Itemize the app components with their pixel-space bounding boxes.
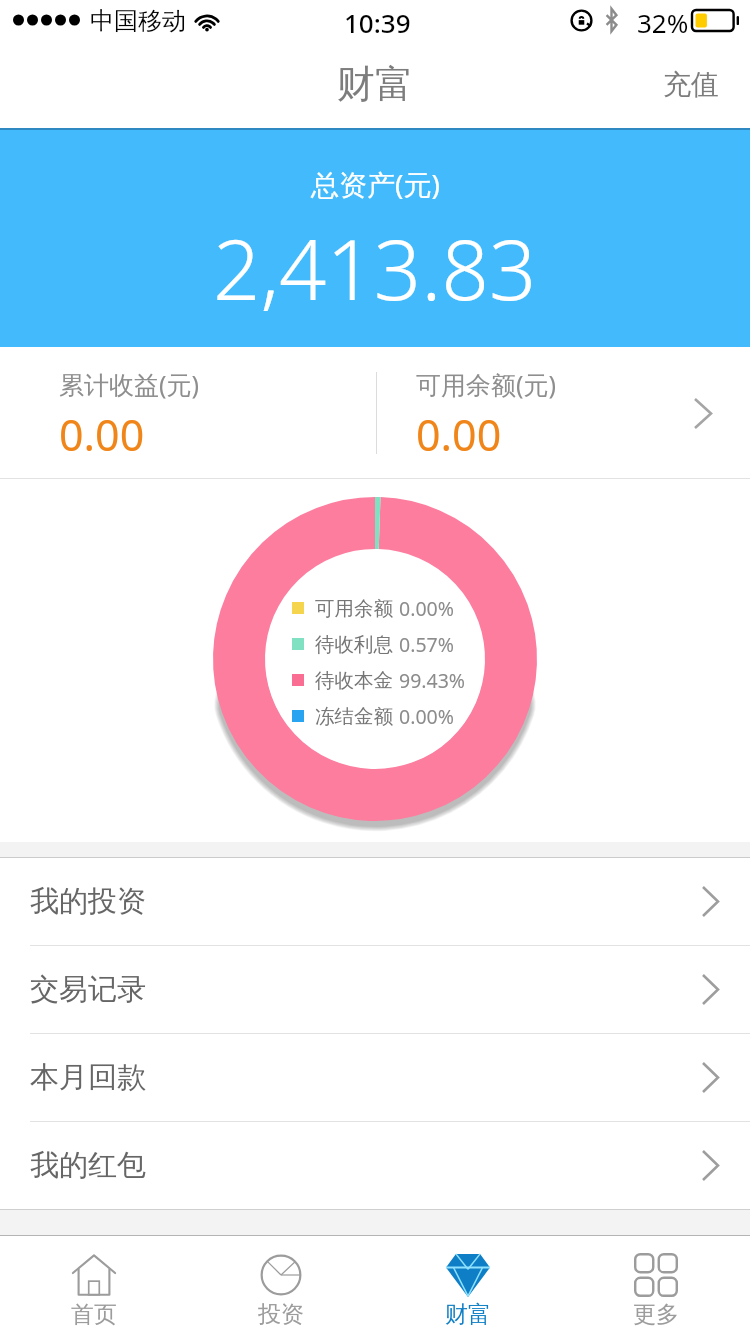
button[interactable]: 首页	[0, 1236, 187, 1334]
staticText: 待收利息	[315, 632, 393, 657]
staticText: 0.00	[59, 405, 145, 464]
staticText: 总资产(元)	[311, 165, 440, 203]
staticText: 32%	[637, 5, 689, 40]
staticText: 2,413.83	[213, 211, 537, 324]
staticText: 可用余额	[315, 596, 393, 621]
button[interactable]: 累计收益与可用余额明细	[0, 347, 750, 478]
staticText: 0.57%	[399, 631, 454, 658]
staticText: 可用余额(元)	[416, 367, 557, 401]
staticText: 中国移动	[90, 6, 186, 36]
button[interactable]: 财富	[374, 1236, 562, 1334]
staticText: 我的红包	[30, 1147, 146, 1184]
button[interactable]: 充值	[633, 40, 750, 128]
staticText: 财富	[337, 60, 413, 108]
button[interactable]: 我的红包	[0, 1122, 750, 1209]
staticText: 0.00%	[399, 703, 454, 730]
staticText: 冻结金额	[315, 704, 393, 729]
staticText: 更多	[633, 1300, 679, 1329]
staticText: 10:39	[344, 5, 411, 40]
staticText: 投资	[258, 1300, 304, 1329]
button[interactable]: 我的投资	[0, 858, 750, 945]
staticText: 本月回款	[30, 1059, 146, 1096]
staticText: 累计收益(元)	[59, 367, 200, 401]
staticText: 交易记录	[30, 971, 146, 1008]
staticText: 我的投资	[30, 883, 146, 920]
staticText: 财富	[445, 1300, 491, 1329]
button[interactable]: 本月回款	[0, 1034, 750, 1121]
staticText: 充值	[663, 67, 719, 102]
staticText: 0.00	[416, 405, 502, 464]
staticText: 0.00%	[399, 595, 454, 622]
staticText: 首页	[71, 1300, 117, 1329]
staticText: 99.43%	[399, 667, 466, 694]
button[interactable]: 投资	[187, 1236, 374, 1334]
staticText: 待收本金	[315, 668, 393, 693]
button[interactable]: 更多	[562, 1236, 750, 1334]
button[interactable]: 交易记录	[0, 946, 750, 1033]
